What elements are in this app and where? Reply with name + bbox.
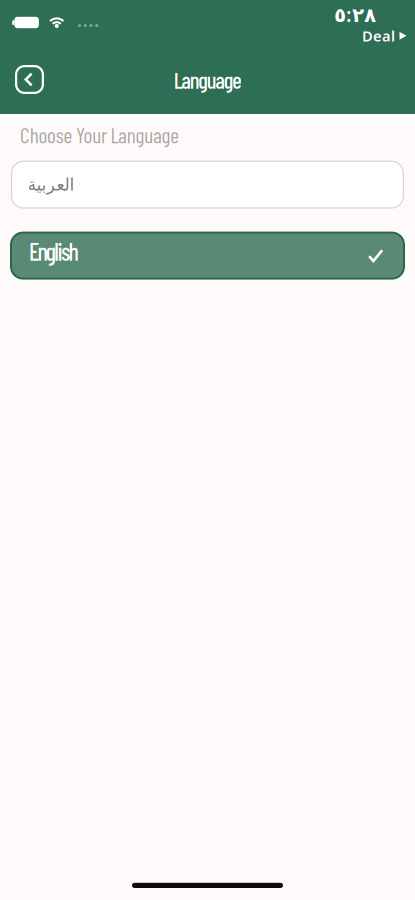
staticText: English: [29, 237, 78, 265]
button[interactable]: Back: [15, 65, 44, 94]
staticText: ٥:٢٨: [334, 1, 376, 28]
button[interactable]: English: [10, 232, 405, 280]
staticText: Language: [174, 66, 241, 93]
staticText: العربية: [27, 175, 74, 194]
staticText: Choose Your Language: [20, 122, 179, 148]
button[interactable]: Deal: [362, 26, 406, 45]
staticText: Deal: [362, 26, 395, 45]
button[interactable]: العربية: [11, 161, 404, 209]
